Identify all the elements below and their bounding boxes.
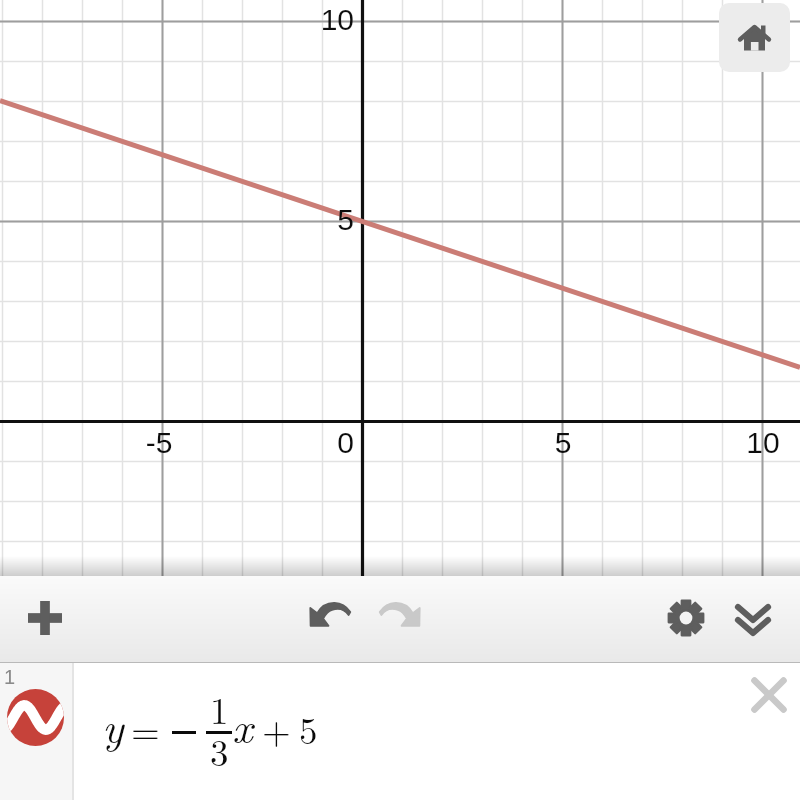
staticText: 5 [523,426,603,460]
staticText: 1 [210,682,229,734]
staticText: + [262,702,291,754]
button[interactable]: Toggle plot 1 [0,663,72,800]
staticText: 0 [284,426,354,460]
staticText: 5 [299,702,318,754]
staticText: x [232,693,253,756]
staticText: 10 [284,3,354,37]
staticText: 5 [284,203,354,237]
button[interactable]: Home [719,3,790,72]
button[interactable]: Collapse keypad [718,585,788,655]
staticText: 1 [4,666,16,688]
staticText: -5 [119,426,199,460]
button[interactable]: Undo [295,580,365,650]
staticText: 10 [723,426,800,460]
button[interactable]: Settings [651,583,721,653]
staticText: y [102,693,124,756]
button[interactable]: Delete expression [744,670,794,720]
staticText: = [131,702,160,754]
button[interactable]: Add expression [8,581,82,655]
staticText: 3 [210,724,229,776]
button[interactable]: Redo [365,580,435,650]
